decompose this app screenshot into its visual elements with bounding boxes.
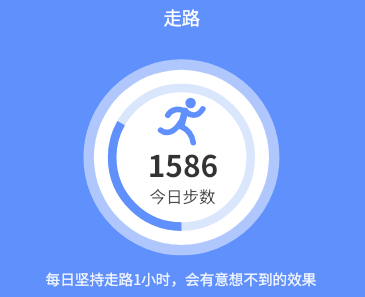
button[interactable]: Today's step progress bbox=[83, 59, 280, 256]
